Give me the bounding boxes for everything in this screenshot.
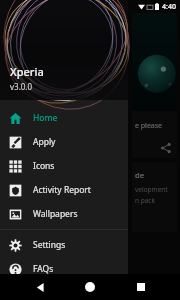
button[interactable]: FAQs xyxy=(0,257,128,281)
staticText: Wallpapers xyxy=(33,208,78,220)
staticText: Icons xyxy=(33,160,55,172)
staticText: Settings xyxy=(33,239,66,251)
staticText: 4:40 xyxy=(162,2,176,12)
button[interactable]: Home xyxy=(0,106,128,130)
button[interactable]: About xyxy=(0,281,128,300)
staticText: Activity Report xyxy=(33,184,91,196)
staticText: n pack xyxy=(135,196,155,205)
button[interactable]: Wallpapers xyxy=(0,202,128,226)
button[interactable]: Back xyxy=(29,276,51,298)
staticText: About xyxy=(33,285,58,297)
staticText: velopment xyxy=(135,185,168,194)
button[interactable]: Apply xyxy=(0,130,128,154)
staticText: Xperia xyxy=(10,64,44,79)
staticText: de xyxy=(135,170,144,180)
staticText: FAQs xyxy=(33,263,54,275)
button[interactable]: Icons xyxy=(0,154,128,178)
button[interactable]: Recents xyxy=(130,276,152,298)
button[interactable]: Activity Report xyxy=(0,178,128,202)
staticText: e please xyxy=(135,121,163,131)
staticText: Home xyxy=(33,112,58,124)
button[interactable]: Share xyxy=(160,142,172,154)
button[interactable]: Settings xyxy=(0,233,128,257)
staticText: v3.0.0 xyxy=(10,81,33,92)
staticText: Apply xyxy=(33,136,56,148)
button[interactable]: Home xyxy=(79,276,101,298)
